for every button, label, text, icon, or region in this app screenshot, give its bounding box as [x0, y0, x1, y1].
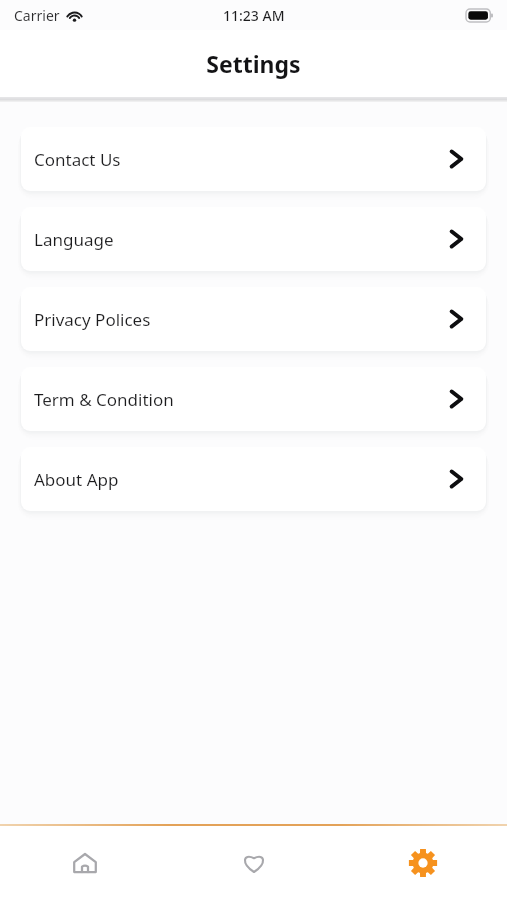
button[interactable]: Favorites	[169, 826, 338, 900]
button[interactable]: About App	[21, 447, 486, 511]
button[interactable]: Term & Condition	[21, 367, 486, 431]
button[interactable]: Home	[0, 826, 169, 900]
button[interactable]: Settings	[338, 826, 507, 900]
staticText: Contact Us	[34, 148, 449, 171]
staticText: Term & Condition	[34, 388, 449, 411]
staticText: 11:23 AM	[223, 6, 285, 25]
staticText: Carrier	[14, 6, 60, 25]
staticText: About App	[34, 468, 449, 491]
button[interactable]: Contact Us	[21, 127, 486, 191]
button[interactable]: Language	[21, 207, 486, 271]
staticText: Settings	[206, 48, 301, 79]
button[interactable]: Privacy Polices	[21, 287, 486, 351]
staticText: Language	[34, 228, 449, 251]
staticText: Privacy Polices	[34, 308, 449, 331]
